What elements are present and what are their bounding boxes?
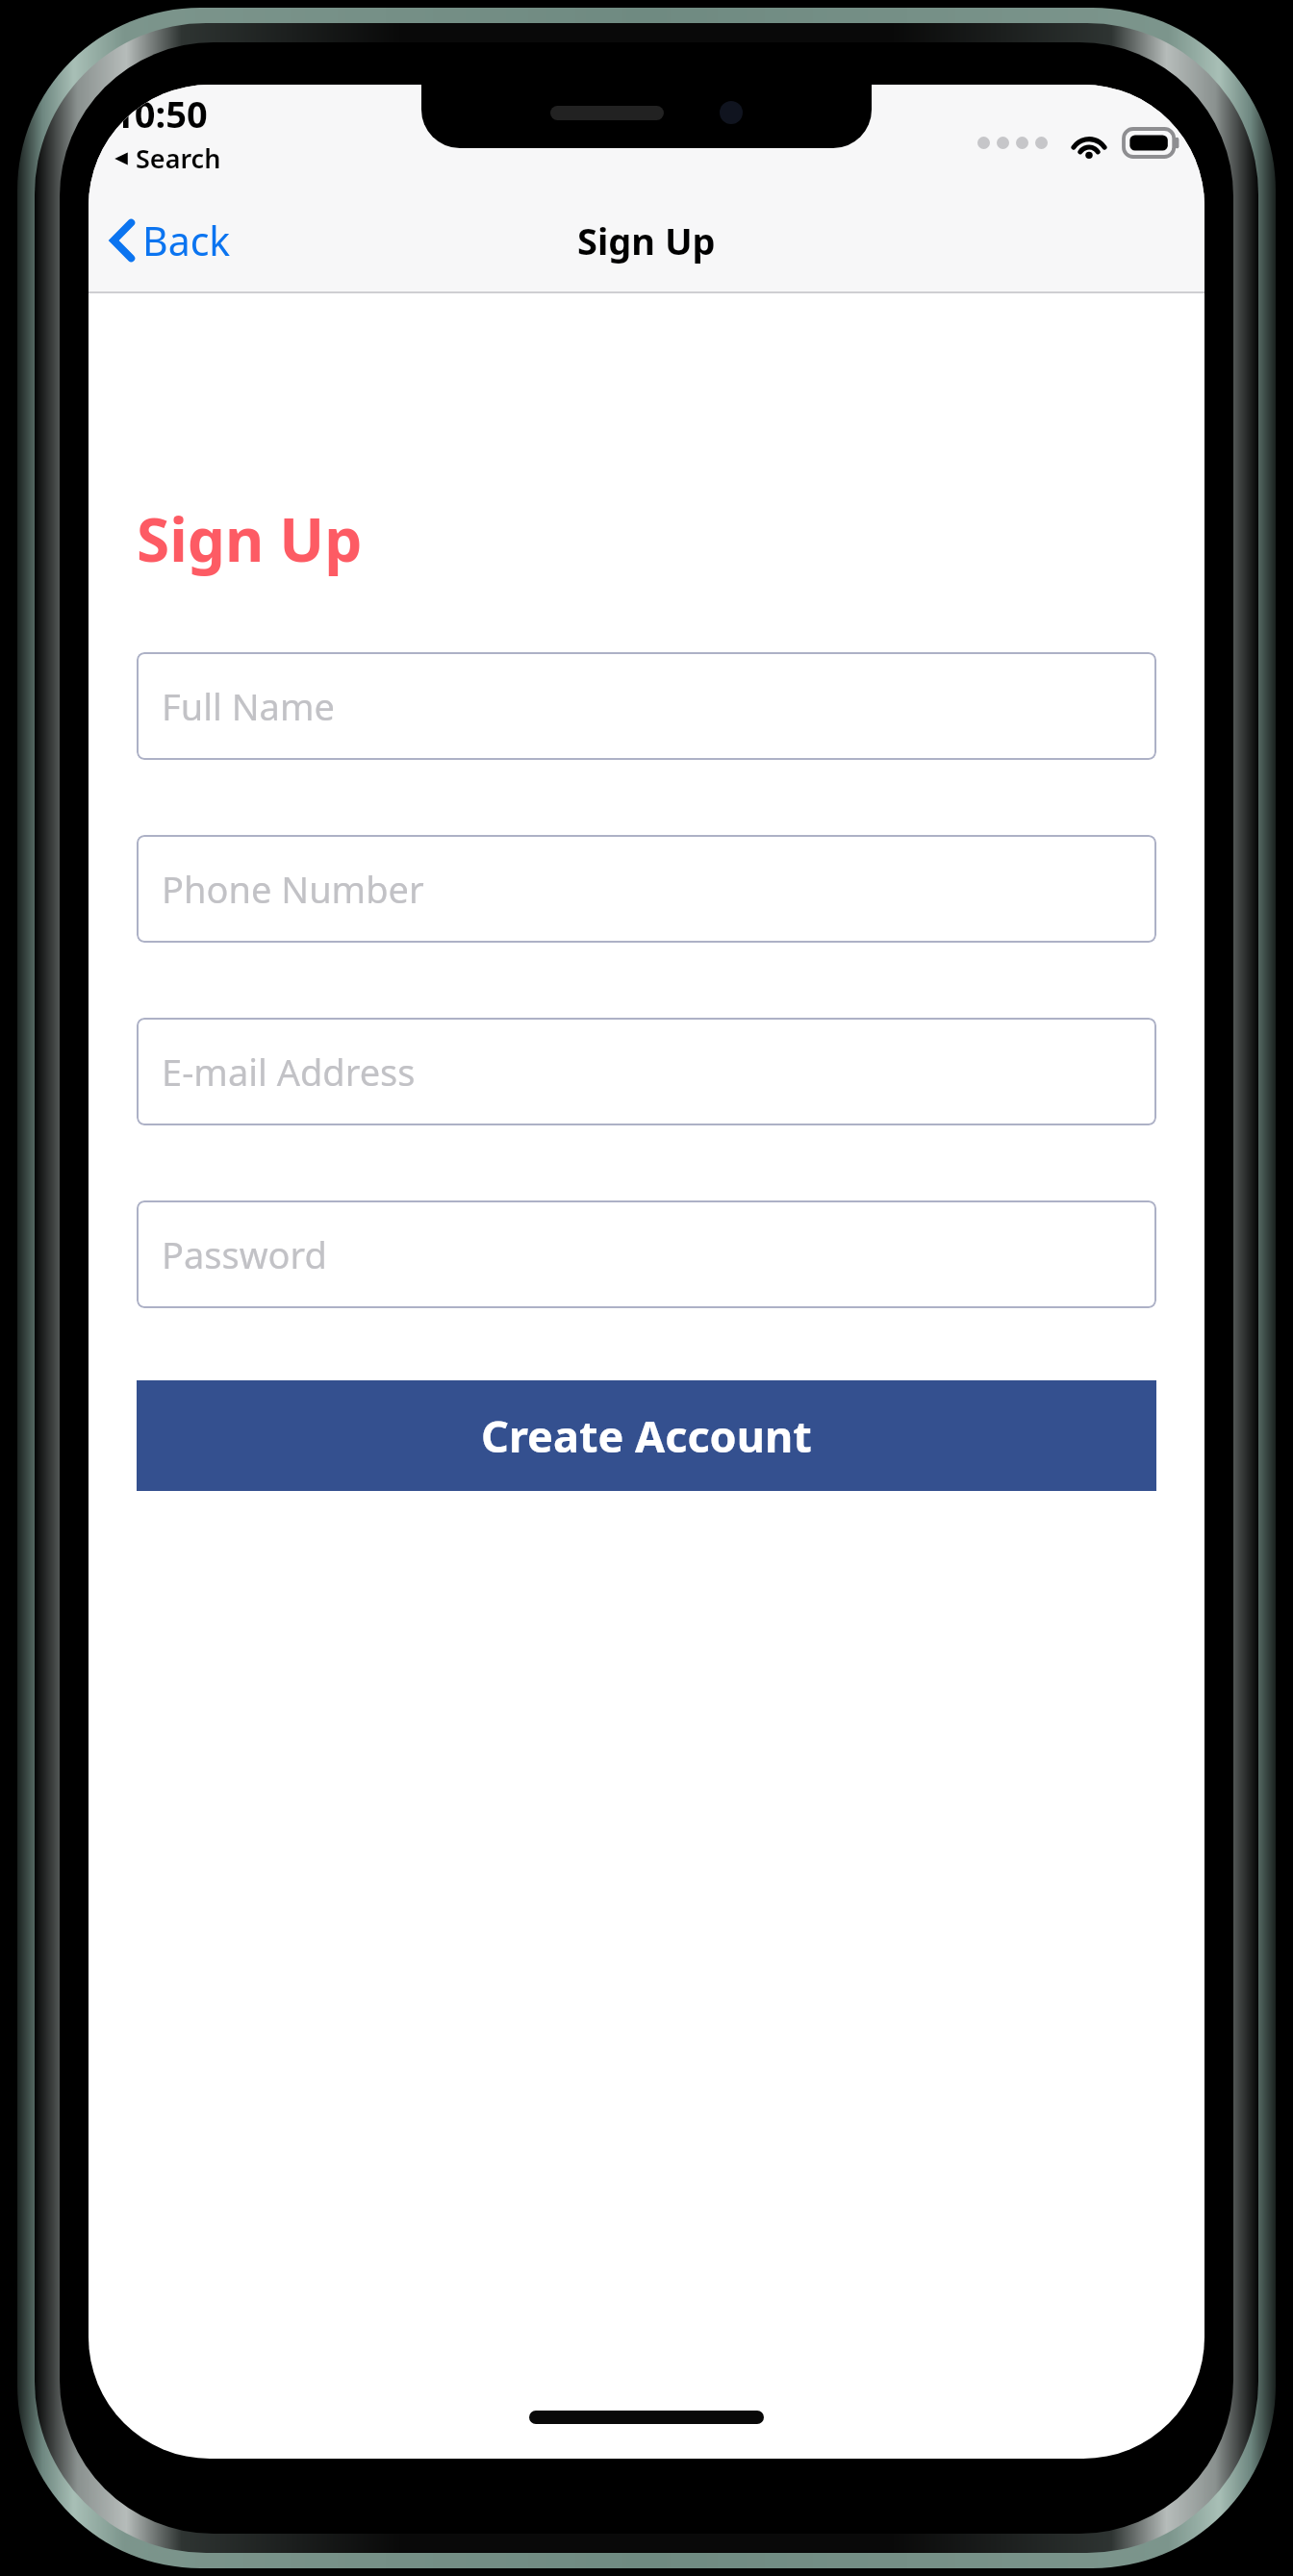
button[interactable]: Password	[137, 1200, 1156, 1308]
staticText: Back	[142, 214, 231, 267]
staticText: E-mail Address	[162, 1047, 416, 1097]
staticText: Search	[136, 140, 221, 176]
button[interactable]: Back	[89, 200, 250, 281]
button[interactable]: Create Account	[137, 1380, 1156, 1491]
staticText: Sign Up	[137, 498, 363, 579]
staticText: Sign Up	[577, 215, 716, 265]
staticText: 10:50	[114, 88, 208, 139]
staticText: Phone Number	[162, 864, 424, 914]
staticText: Full Name	[162, 681, 335, 731]
staticText: Create Account	[481, 1406, 812, 1465]
button[interactable]: Phone Number	[137, 835, 1156, 943]
button[interactable]: E-mail Address	[137, 1018, 1156, 1125]
button[interactable]: Full Name	[137, 652, 1156, 760]
staticText: Password	[162, 1229, 327, 1279]
other: Back	[110, 219, 135, 262]
